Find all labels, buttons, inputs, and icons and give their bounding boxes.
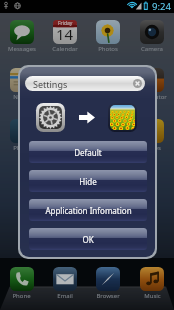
button[interactable]: Hide [29, 170, 147, 192]
staticText: Calculator [138, 93, 167, 101]
button[interactable]: Files [86, 119, 130, 152]
staticText: 9:24 [152, 0, 171, 13]
button[interactable]: Notes [0, 68, 43, 101]
button[interactable]: Utilities [43, 68, 86, 101]
staticText: Hide [79, 176, 97, 187]
staticText: OK [82, 234, 94, 245]
staticText: Phone [12, 292, 31, 300]
button[interactable]: Market [43, 119, 86, 152]
button[interactable]: Calculator [130, 68, 174, 101]
button[interactable]: Browser [86, 267, 130, 300]
button[interactable]: Settings [25, 76, 145, 91]
button[interactable]: Messages [0, 20, 43, 53]
staticText: Browser [96, 292, 120, 300]
staticText: Email [57, 292, 73, 300]
staticText: Music [144, 292, 161, 300]
button[interactable]: Phone [0, 267, 43, 300]
staticText: Files [102, 144, 115, 152]
staticText: Notes [144, 144, 161, 152]
button[interactable]: Application Infomation [29, 199, 147, 221]
button[interactable]: Photos [86, 20, 130, 53]
button[interactable]: Notes [130, 119, 174, 152]
button[interactable]: Compass [86, 68, 130, 101]
staticText: Friday [58, 20, 73, 27]
button[interactable]: OK [29, 228, 147, 250]
button[interactable]: Player [0, 119, 43, 152]
staticText: 14 [56, 24, 74, 44]
staticText: Calendar [52, 45, 78, 53]
staticText: Notes [13, 93, 30, 101]
staticText: Player [13, 144, 31, 152]
staticText: Settings [33, 78, 68, 90]
staticText: Application Infomation [45, 205, 132, 216]
staticText: Market [54, 144, 75, 152]
button[interactable]: Clear text [133, 79, 142, 88]
staticText: Camera [141, 45, 163, 53]
staticText: Default [74, 147, 102, 158]
button[interactable]: Music [130, 267, 174, 300]
button[interactable]: Settings app icon [36, 103, 65, 132]
button[interactable]: Default [29, 141, 147, 163]
button[interactable]: New icon [110, 105, 135, 130]
button[interactable]: Email [43, 267, 86, 300]
button[interactable]: Friday [43, 20, 86, 53]
staticText: Photos [98, 45, 118, 53]
staticText: Messages [8, 45, 36, 53]
button[interactable]: Camera [130, 20, 174, 53]
